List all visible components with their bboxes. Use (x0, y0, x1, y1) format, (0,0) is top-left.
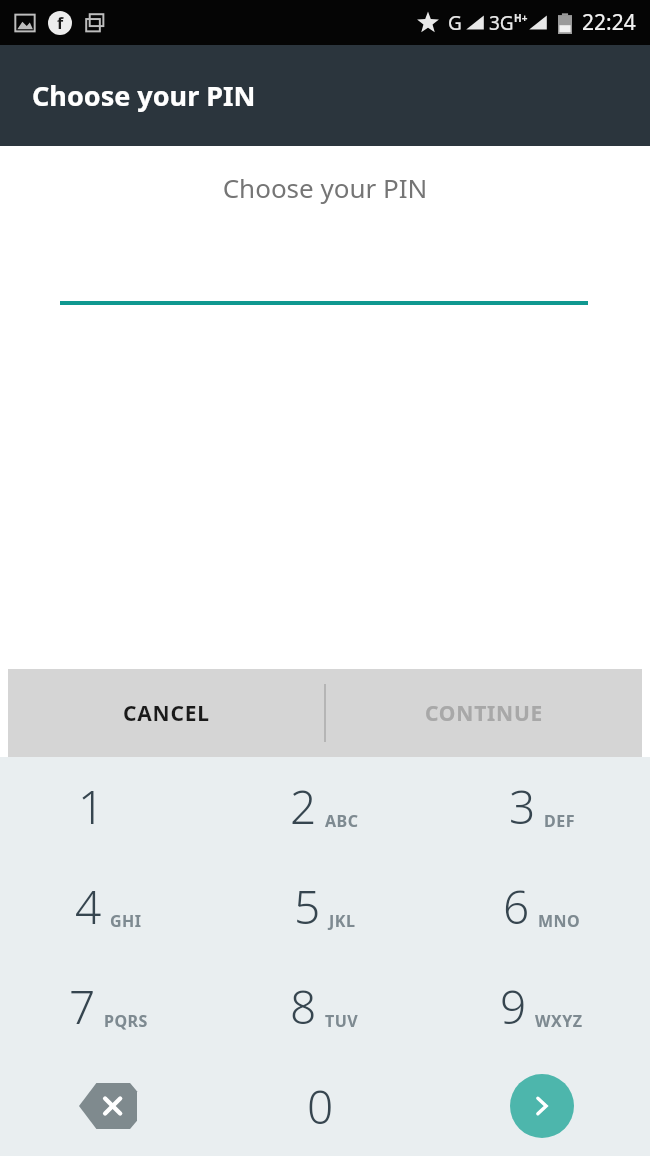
button[interactable]: 9 (433, 956, 650, 1056)
staticText: MNO (538, 910, 581, 932)
staticText: 3G (489, 10, 514, 36)
staticText: 3 (509, 775, 536, 838)
staticText: TUV (325, 1010, 359, 1032)
staticText: G (448, 10, 462, 36)
staticText: 2 (290, 775, 317, 838)
button[interactable]: 3 (433, 757, 650, 856)
button[interactable]: 6 (433, 856, 650, 956)
button[interactable]: 8 (216, 956, 433, 1056)
staticText: Choose your PIN (32, 77, 256, 114)
staticText: CANCEL (123, 699, 210, 728)
staticText: 7 (69, 975, 96, 1038)
staticText: PQRS (104, 1010, 148, 1032)
staticText: 22:24 (582, 8, 636, 37)
staticText: CONTINUE (425, 699, 544, 728)
staticText: 4 (75, 875, 102, 938)
button[interactable]: CANCEL (8, 669, 324, 757)
button[interactable]: CONTINUE (326, 669, 642, 757)
button[interactable]: 2 (216, 757, 433, 856)
staticText: Choose your PIN (0, 170, 650, 205)
staticText: H+ (514, 11, 528, 25)
button[interactable]: Continue (433, 1056, 650, 1156)
staticText: 8 (290, 975, 317, 1038)
staticText: 9 (500, 975, 527, 1038)
button[interactable]: 1 (0, 757, 216, 856)
staticText: WXYZ (535, 1010, 583, 1032)
staticText: 5 (294, 875, 321, 938)
staticText: f (57, 12, 64, 34)
staticText: DEF (544, 810, 575, 832)
button[interactable]: 0 (216, 1056, 433, 1156)
staticText: GHI (110, 910, 142, 932)
button[interactable]: Delete (0, 1056, 216, 1156)
staticText: JKL (329, 910, 356, 932)
staticText: 0 (307, 1075, 334, 1138)
staticText: ABC (325, 810, 359, 832)
staticText: 1 (78, 775, 105, 838)
button[interactable]: 7 (0, 956, 216, 1056)
staticText: 6 (503, 875, 530, 938)
button[interactable]: 4 (0, 856, 216, 956)
button[interactable]: 5 (216, 856, 433, 956)
